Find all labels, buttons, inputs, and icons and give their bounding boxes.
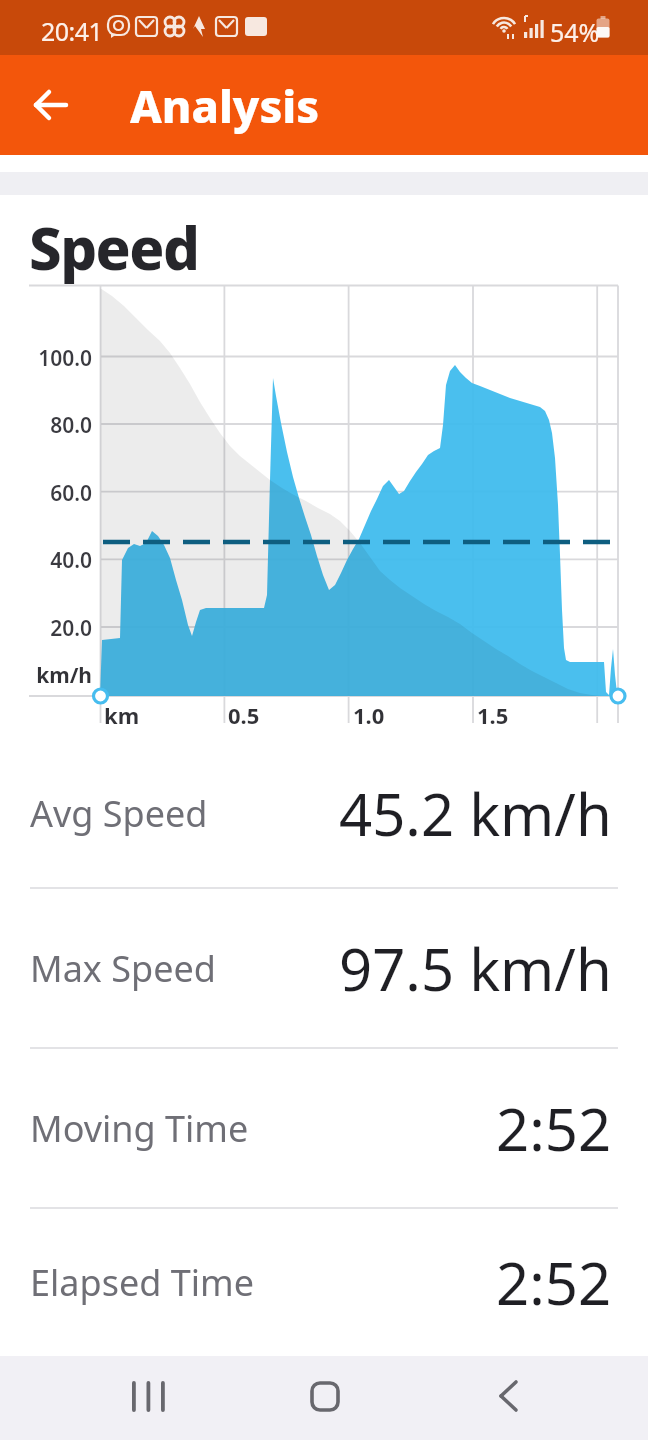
staticText: km (104, 700, 140, 730)
button[interactable] (297, 1368, 353, 1424)
staticText: 2:52 (496, 1089, 612, 1168)
staticText: 2:52 (496, 1243, 612, 1322)
staticText: km/h (0, 661, 92, 690)
staticText: 20:41 (41, 14, 103, 48)
staticText: Moving Time (30, 1104, 249, 1153)
button[interactable] (480, 1368, 536, 1424)
button[interactable]: Avg Speed (30, 740, 612, 887)
staticText: Elapsed Time (30, 1258, 254, 1307)
button[interactable] (120, 1368, 176, 1424)
button[interactable]: Moving Time (30, 1049, 612, 1207)
staticText: Max Speed (30, 944, 216, 993)
button[interactable] (22, 76, 80, 134)
staticText: 0.5 (228, 700, 260, 730)
staticText: Analysis (130, 75, 320, 136)
button[interactable]: Max Speed (30, 889, 612, 1047)
staticText: Avg Speed (30, 789, 208, 838)
staticText: 40.0 (0, 546, 92, 575)
staticText: Speed (29, 208, 199, 287)
staticText: 100.0 (0, 344, 92, 373)
staticText: 60.0 (0, 479, 92, 508)
staticText: 97.5 km/h (339, 929, 612, 1008)
staticText: 54% (550, 15, 600, 49)
staticText: 20.0 (0, 614, 92, 643)
button[interactable]: Elapsed Time (30, 1209, 612, 1355)
staticText: 80.0 (0, 411, 92, 440)
staticText: 1.5 (477, 700, 509, 730)
staticText: 1.0 (353, 700, 385, 730)
staticText: 45.2 km/h (339, 774, 612, 853)
